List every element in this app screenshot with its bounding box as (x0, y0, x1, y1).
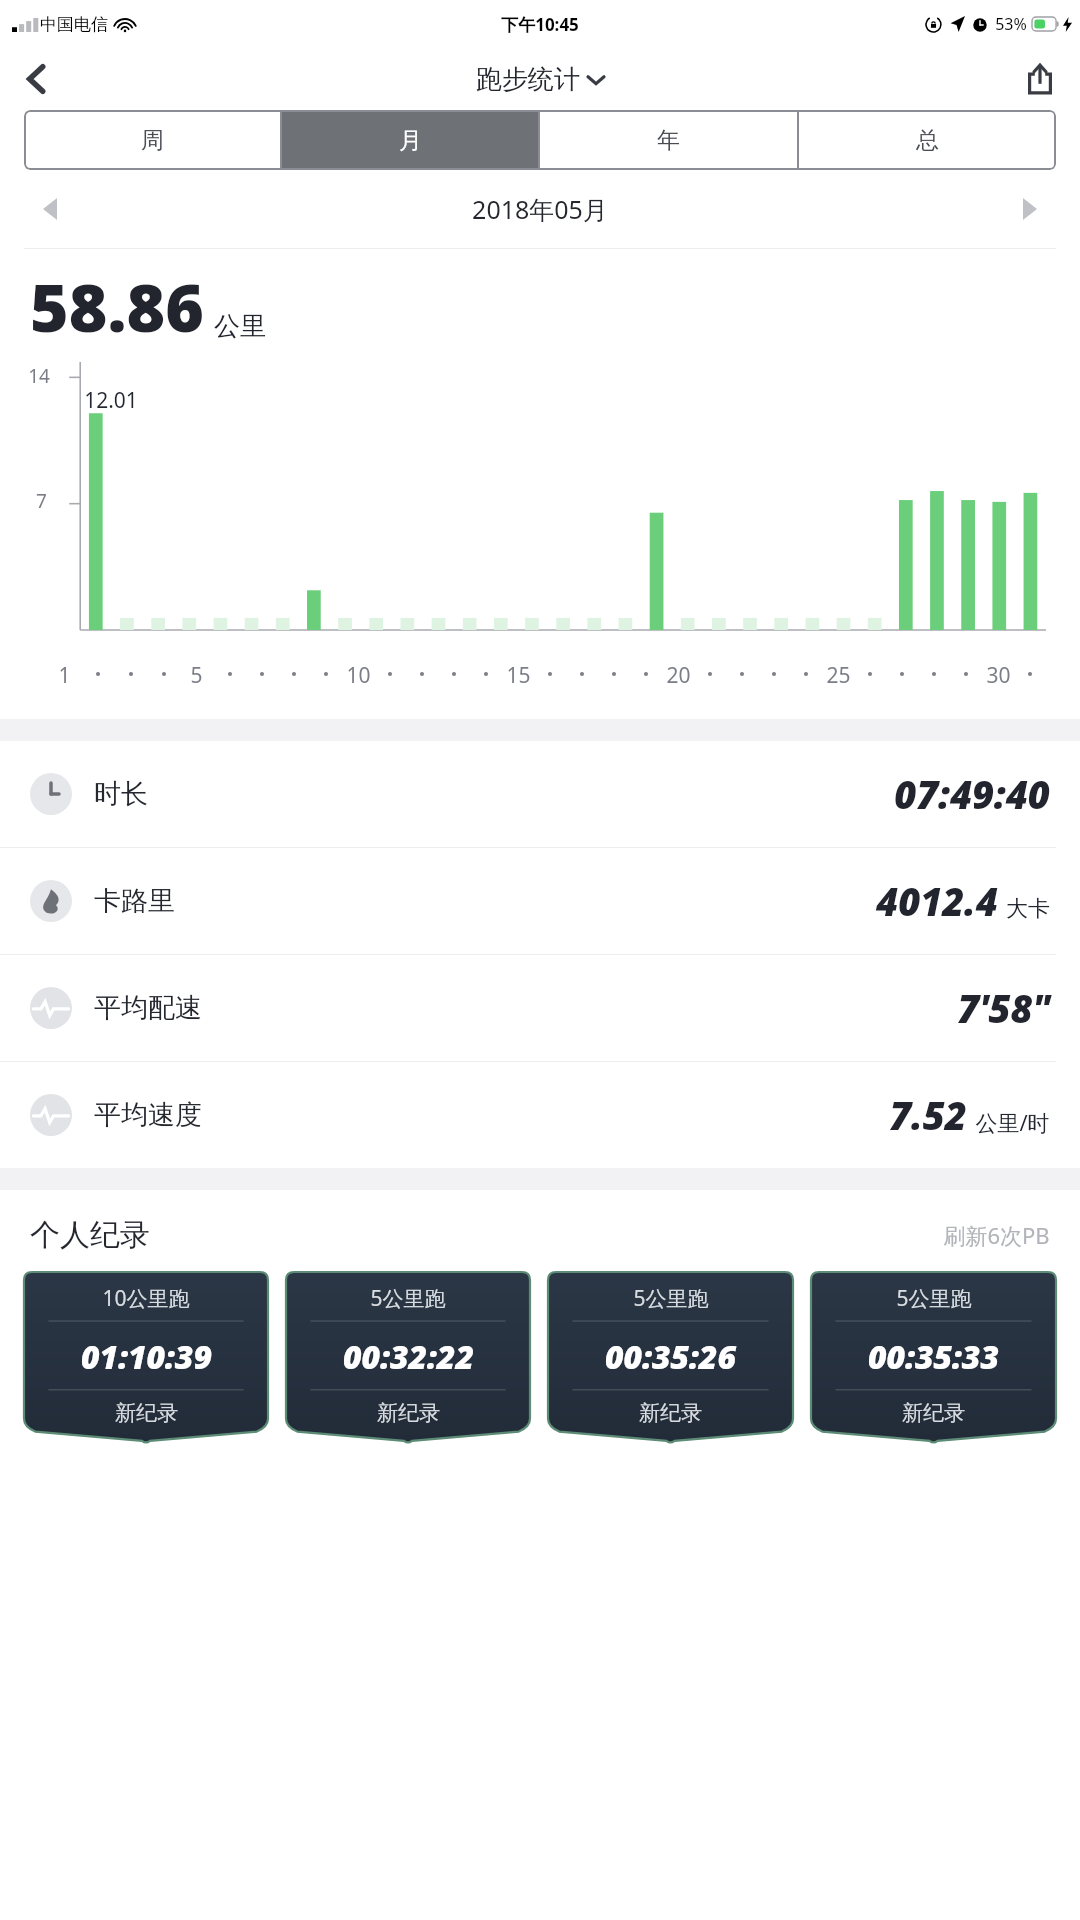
staticText: 大卡 (1006, 895, 1050, 923)
staticText: 中国电信 (40, 14, 108, 35)
button[interactable]: 5公里跑 (811, 1272, 1056, 1444)
button[interactable]: Back (8, 51, 64, 107)
staticText: 5 (190, 661, 203, 690)
staticText: 新纪录 (639, 1400, 702, 1426)
button[interactable]: Next month (1004, 183, 1056, 235)
button[interactable]: 年 (540, 110, 797, 170)
staticText: 刷新6次PB (943, 1220, 1050, 1250)
staticText: 新纪录 (115, 1400, 178, 1426)
staticText: 周 (141, 126, 164, 155)
staticText: 01:10:39 (81, 1335, 212, 1379)
button[interactable]: 卡路里 (0, 848, 1080, 954)
button[interactable]: 总 (799, 110, 1056, 170)
button[interactable]: 跑步统计 (476, 63, 604, 96)
staticText: 新纪录 (902, 1400, 965, 1426)
staticText: 平均配速 (94, 991, 202, 1025)
staticText: 7'58" (957, 982, 1050, 1034)
staticText: 5公里跑 (370, 1284, 446, 1313)
button[interactable]: 5公里跑 (548, 1272, 793, 1444)
button[interactable]: 5公里跑 (286, 1272, 530, 1444)
staticText: 14 (28, 363, 50, 389)
staticText: 1 (58, 661, 71, 690)
button[interactable]: 平均配速 (0, 955, 1080, 1061)
staticText: 10公里跑 (102, 1284, 190, 1313)
staticText: 12.01 (84, 386, 138, 415)
button[interactable]: 周 (24, 110, 280, 170)
button[interactable]: 月 (282, 110, 538, 170)
staticText: 公里/时 (975, 1107, 1050, 1137)
staticText: 时长 (94, 777, 148, 811)
staticText: 年 (657, 126, 680, 155)
staticText: 15 (506, 661, 531, 690)
staticText: 5公里跑 (896, 1284, 972, 1313)
staticText: 07:49:40 (894, 768, 1050, 820)
staticText: 25 (826, 661, 851, 690)
staticText: 个人纪录 (30, 1216, 150, 1254)
staticText: 7.52 (889, 1089, 967, 1141)
staticText: 月 (399, 126, 422, 155)
staticText: 30 (986, 661, 1011, 690)
button[interactable]: 平均速度 (0, 1062, 1080, 1168)
staticText: 53% (995, 13, 1027, 35)
staticText: 00:32:22 (343, 1335, 474, 1379)
staticText: 2018年05月 (472, 192, 608, 226)
staticText: 平均速度 (94, 1098, 202, 1132)
staticText: 总 (916, 126, 939, 155)
staticText: 20 (666, 661, 691, 690)
staticText: 跑步统计 (476, 63, 580, 96)
button[interactable]: Share (1012, 51, 1068, 107)
staticText: 00:35:33 (868, 1335, 999, 1379)
button[interactable]: Previous month (24, 183, 76, 235)
staticText: 4012.4 (876, 875, 998, 927)
staticText: 公里 (214, 310, 266, 343)
staticText: 5公里跑 (633, 1284, 709, 1313)
staticText: 00:35:26 (605, 1335, 736, 1379)
staticText: 58.86 (30, 261, 204, 351)
button[interactable]: 10公里跑 (24, 1272, 268, 1444)
staticText: 新纪录 (377, 1400, 440, 1426)
button[interactable]: 时长 (0, 741, 1080, 847)
staticText: 10 (346, 661, 371, 690)
staticText: 7 (36, 488, 47, 514)
staticText: 卡路里 (94, 884, 175, 918)
staticText: 下午10:45 (501, 13, 579, 36)
